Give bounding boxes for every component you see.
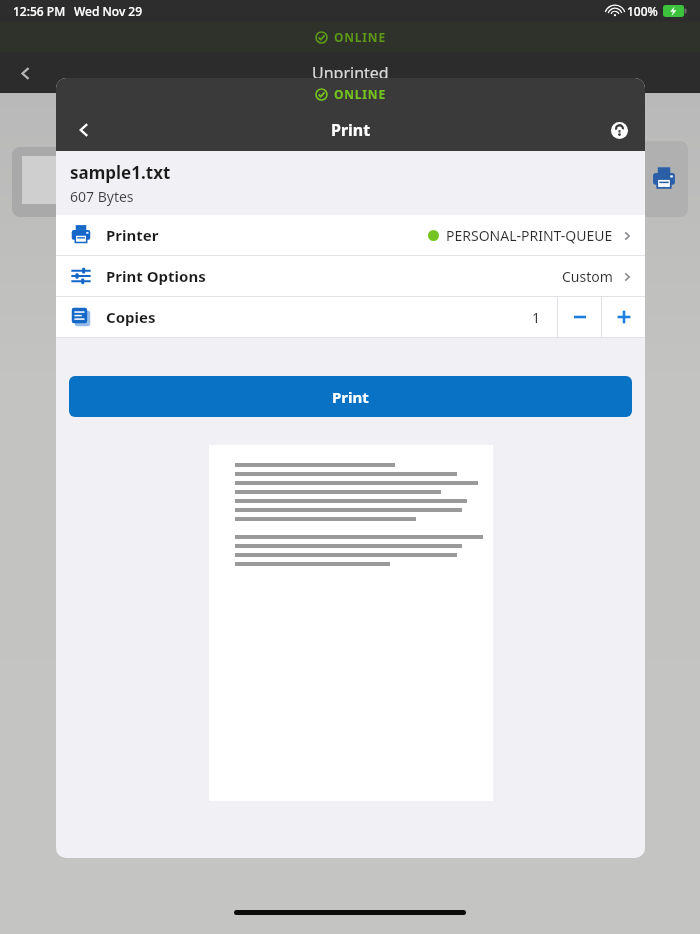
button[interactable]: Increase copies (602, 297, 645, 337)
staticText: Custom (562, 267, 613, 286)
staticText: 607 Bytes (70, 187, 134, 206)
button[interactable]: Decrease copies (558, 297, 601, 337)
button[interactable]: Print (69, 376, 632, 417)
staticText: Print (332, 387, 369, 407)
staticText: Copies (106, 307, 156, 327)
button[interactable]: Back (14, 62, 36, 84)
staticText: Wed Nov 29 (74, 3, 143, 19)
staticText: Print Options (106, 266, 206, 286)
staticText: 12:56 PM (13, 3, 66, 19)
button[interactable]: Help (593, 109, 645, 151)
staticText: ONLINE (334, 29, 386, 45)
staticText: PERSONAL-PRINT-QUEUE (446, 226, 613, 245)
staticText: sample1.txt (70, 161, 171, 184)
button[interactable]: Printer (56, 215, 645, 255)
staticText: Printer (106, 225, 159, 245)
staticText: Print (331, 119, 371, 141)
staticText: 1 (532, 308, 541, 327)
staticText: Unprinted (312, 62, 389, 84)
button[interactable]: Copies (56, 297, 557, 337)
button[interactable]: Print Options (56, 256, 645, 296)
staticText: ONLINE (334, 86, 386, 102)
staticText: 100% (627, 3, 658, 19)
button[interactable]: Back (56, 109, 112, 151)
